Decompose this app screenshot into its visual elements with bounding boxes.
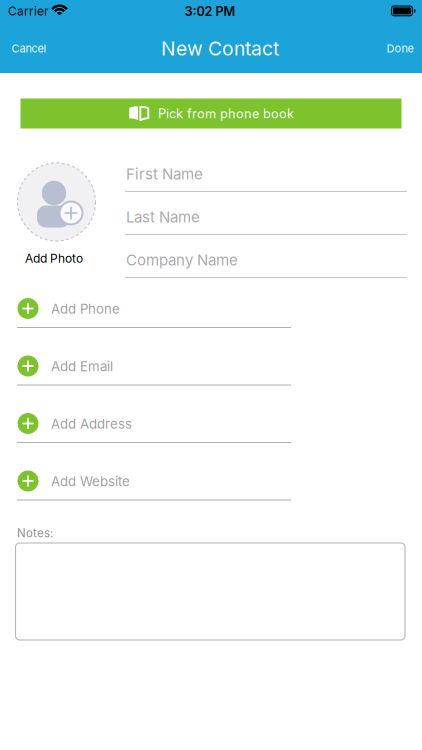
staticText: Carrier (8, 4, 49, 18)
button[interactable]: Done (386, 42, 413, 55)
button[interactable]: Notes (15, 543, 405, 640)
button[interactable]: Last Name (125, 205, 407, 239)
button[interactable]: Add Photo (15, 161, 97, 271)
staticText: Notes: (17, 526, 53, 540)
staticText: Cancel (11, 42, 46, 55)
staticText: Done (386, 42, 413, 55)
staticText: Add Photo (25, 251, 83, 266)
staticText: Add Phone (51, 301, 120, 317)
staticText: First Name (126, 165, 203, 183)
staticText: Add Address (51, 416, 132, 432)
button[interactable]: Add Address (17, 409, 291, 447)
button[interactable]: Add Email (17, 351, 291, 389)
button[interactable]: Cancel (11, 42, 46, 55)
button[interactable]: Add Phone (17, 294, 291, 332)
staticText: Add Email (51, 358, 113, 374)
staticText: 3:02 PM (184, 4, 235, 19)
staticText: New Contact (161, 37, 279, 60)
button[interactable]: First Name (125, 162, 407, 196)
button[interactable]: Pick from phone book (20, 98, 401, 128)
button[interactable]: Add Website (17, 466, 291, 504)
staticText: Company Name (126, 251, 238, 269)
staticText: Add Website (51, 473, 130, 489)
button[interactable]: Company Name (125, 248, 407, 282)
staticText: Pick from phone book (158, 106, 294, 121)
staticText: Last Name (126, 208, 200, 226)
